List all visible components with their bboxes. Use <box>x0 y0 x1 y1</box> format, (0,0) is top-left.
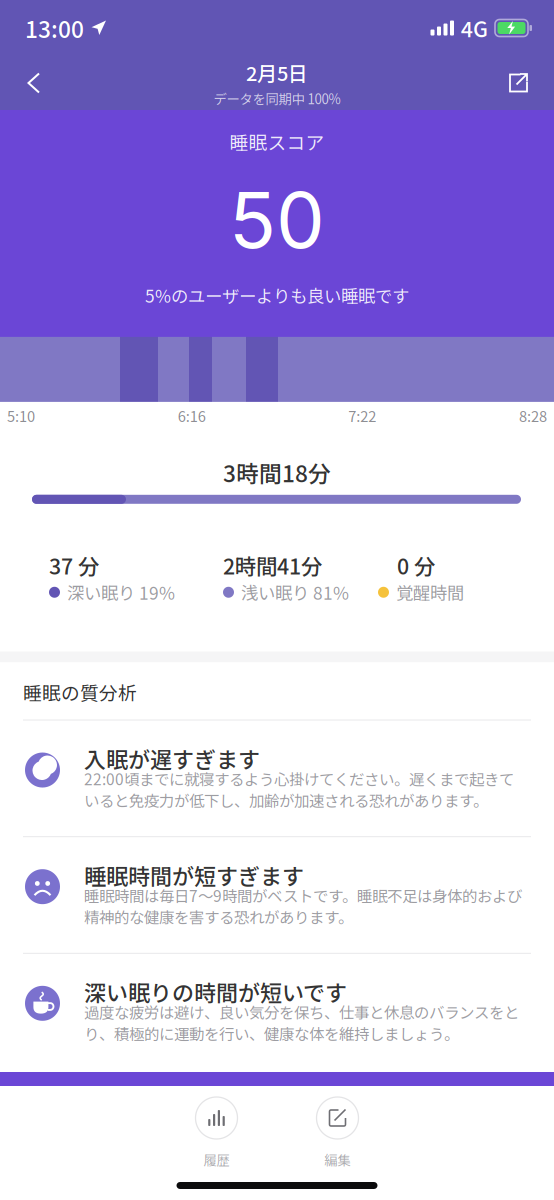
staticText: 睡眠スコア <box>229 128 324 155</box>
staticText: 0 分 <box>397 550 435 581</box>
staticText: 2月5日 <box>246 58 308 87</box>
button[interactable]: 睡眠時間が短すぎます <box>0 837 554 953</box>
staticText: 22:00頃までに就寝するよう心掛けてください。遅くまで起きていると免疫力が低下… <box>84 767 514 811</box>
staticText: 睡眠時間が短すぎます <box>84 859 304 891</box>
button[interactable]: 入眠が遅すぎます <box>0 720 554 836</box>
staticText: 履歴 <box>203 1150 229 1169</box>
staticText: 50 <box>229 173 325 267</box>
staticText: 4G <box>461 13 488 43</box>
staticText: 睡眠の質分析 <box>23 678 137 705</box>
staticText: データを同期中 100% <box>213 89 340 108</box>
staticText: 8:28 <box>519 405 547 426</box>
button[interactable]: Back <box>0 61 62 104</box>
staticText: 2時間41分 <box>223 550 322 581</box>
staticText: 入眠が遅すぎます <box>84 742 260 774</box>
staticText: 3時間18分 <box>223 456 331 489</box>
staticText: 過度な疲労は避け、良い気分を保ち、仕事と休息のバランスをとり、積極的に運動を行い… <box>84 1001 519 1044</box>
button[interactable]: 履歴 <box>177 1093 255 1173</box>
staticText: 深い眠り 19% <box>67 580 175 605</box>
staticText: 睡眠時間は毎日7〜9時間がベストです。睡眠不足は身体的および精神的な健康を害する… <box>84 884 522 928</box>
staticText: 13:00 <box>25 12 84 44</box>
button[interactable]: Share <box>487 61 554 104</box>
button[interactable]: 深い眠りの時間が短いです <box>0 954 554 1069</box>
button[interactable]: 編集 <box>298 1093 376 1173</box>
staticText: 6:16 <box>178 405 206 426</box>
staticText: 浅い眠り 81% <box>241 580 349 605</box>
staticText: 覚醒時間 <box>396 580 464 605</box>
staticText: 5:10 <box>7 405 35 426</box>
staticText: 37 分 <box>49 550 99 581</box>
staticText: 5%のユーザーよりも良い睡眠です <box>145 283 409 308</box>
staticText: 7:22 <box>348 405 376 426</box>
staticText: 編集 <box>324 1150 350 1169</box>
staticText: 深い眠りの時間が短いです <box>84 976 347 1008</box>
